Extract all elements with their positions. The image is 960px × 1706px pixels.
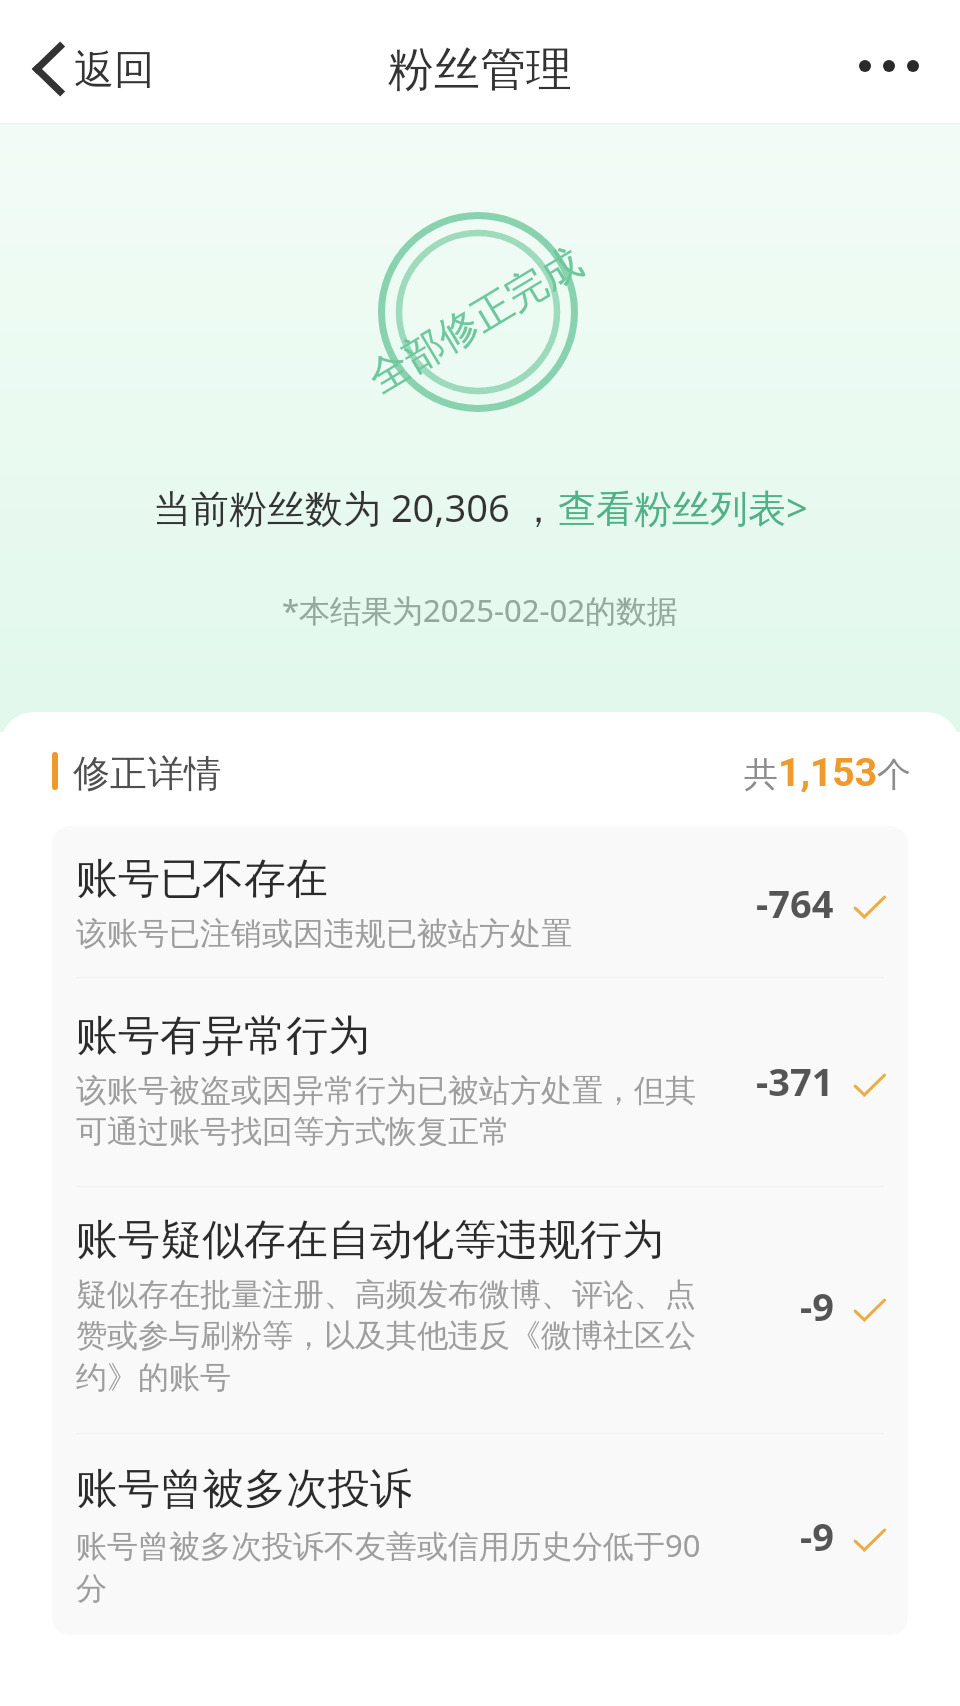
staticText: 疑似存在批量注册、高频发布微博、评论、点赞或参与刷粉等，以及其他违反《微博社区公… (76, 1275, 724, 1398)
button[interactable]: 返回 (27, 44, 154, 94)
staticText: -9 (800, 1280, 834, 1332)
staticText: 账号疑似存在自动化等违规行为 (76, 1214, 664, 1267)
button[interactable]: 账号疑似存在自动化等违规行为 (52, 1187, 908, 1434)
staticText: 修正详情 (73, 750, 221, 792)
staticText: 全部修正完成 (359, 237, 591, 403)
staticText: 返回 (74, 44, 154, 94)
staticText: 查看粉丝列表> (558, 481, 808, 533)
staticText: -764 (756, 877, 834, 929)
staticText: 粉丝管理 (388, 41, 572, 99)
staticText: 共1,153个 (744, 750, 912, 792)
button[interactable]: 查看粉丝列表> (558, 481, 808, 533)
staticText: 当前粉丝数为 20,306 ， (153, 481, 558, 533)
staticText: *本结果为2025-02-02的数据 (282, 589, 678, 631)
staticText: 账号曾被多次投诉不友善或信用历史分低于90分 (76, 1524, 724, 1609)
button[interactable]: 账号已不存在 (52, 826, 908, 978)
staticText: -9 (800, 1510, 834, 1562)
staticText: 该账号被盗或因异常行为已被站方处置，但其可通过账号找回等方式恢复正常 (76, 1071, 724, 1152)
staticText: 账号已不存在 (76, 853, 328, 906)
button[interactable]: 账号曾被多次投诉 (52, 1434, 908, 1635)
staticText: 账号曾被多次投诉 (76, 1463, 412, 1516)
button[interactable]: More options (851, 28, 927, 104)
button[interactable]: 账号有异常行为 (52, 978, 908, 1187)
staticText: -371 (756, 1055, 834, 1107)
staticText: 账号有异常行为 (76, 1010, 370, 1063)
staticText: 该账号已注销或因违规已被站方处置 (76, 914, 572, 953)
